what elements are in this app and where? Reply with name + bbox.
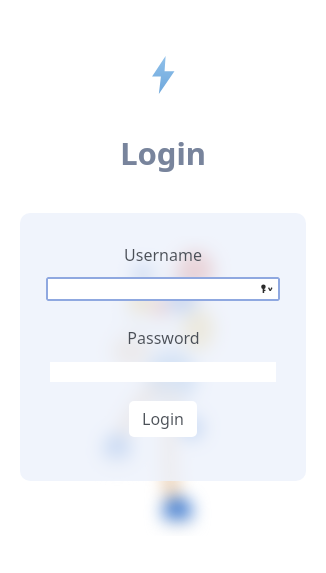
button[interactable] xyxy=(46,277,280,301)
button[interactable]: Login xyxy=(129,401,197,437)
staticText: Login xyxy=(120,132,206,174)
staticText: Password xyxy=(127,327,200,349)
other: App logo xyxy=(150,56,176,94)
staticText: Login xyxy=(142,408,184,430)
staticText: Username xyxy=(124,244,202,266)
